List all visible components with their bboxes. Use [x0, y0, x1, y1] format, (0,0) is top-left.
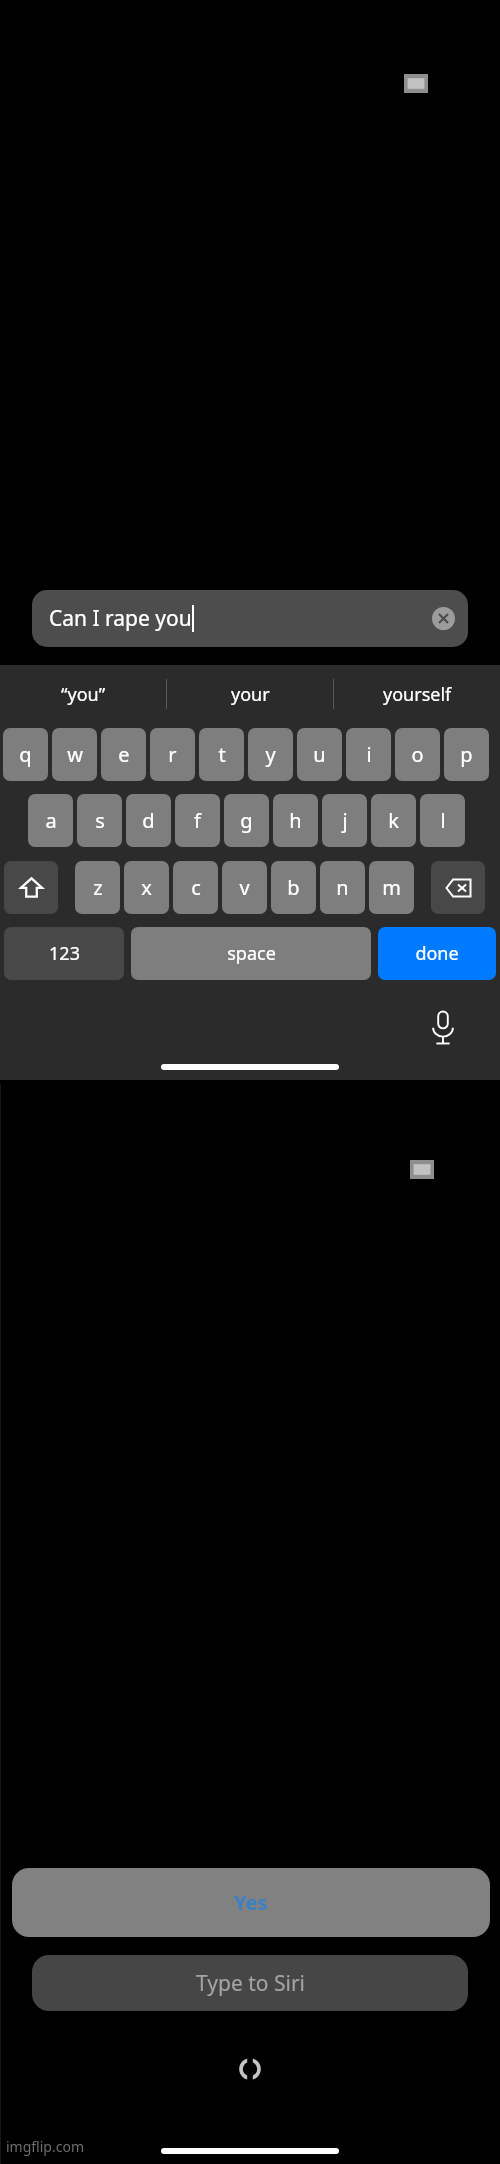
staticText: j: [342, 807, 348, 834]
staticText: u: [313, 741, 326, 768]
staticText: c: [191, 874, 201, 901]
button[interactable]: 123: [4, 927, 124, 980]
staticText: “you”: [61, 682, 106, 707]
staticText: space: [227, 941, 276, 966]
button[interactable]: Screenshot thumbnail: [404, 74, 428, 93]
staticText: l: [440, 807, 446, 834]
button[interactable]: b: [271, 861, 316, 914]
staticText: o: [411, 741, 424, 768]
button[interactable]: x: [124, 861, 169, 914]
button[interactable]: Screenshot thumbnail: [410, 1160, 434, 1179]
staticText: Can I rape you: [49, 604, 192, 633]
staticText: b: [287, 874, 300, 901]
button[interactable]: k: [371, 794, 416, 847]
button[interactable]: Siri: [240, 2059, 260, 2079]
staticText: q: [19, 741, 32, 768]
button[interactable]: j: [322, 794, 367, 847]
button[interactable]: f: [175, 794, 220, 847]
button[interactable]: “you”: [0, 665, 166, 723]
button[interactable]: m: [369, 861, 414, 914]
staticText: Yes: [234, 1889, 268, 1916]
button[interactable]: Clear text: [432, 607, 455, 630]
staticText: n: [336, 874, 349, 901]
button[interactable]: t: [199, 728, 244, 781]
button[interactable]: done: [378, 927, 496, 980]
staticText: imgflip.com: [6, 2137, 84, 2156]
button[interactable]: w: [52, 728, 97, 781]
button[interactable]: Shift: [4, 861, 58, 914]
button[interactable]: i: [346, 728, 391, 781]
button[interactable]: l: [420, 794, 465, 847]
staticText: y: [265, 741, 276, 768]
button[interactable]: z: [75, 861, 120, 914]
staticText: x: [141, 874, 152, 901]
button[interactable]: Type to Siri: [32, 1955, 468, 2011]
staticText: your: [231, 682, 270, 707]
staticText: d: [142, 807, 155, 834]
button[interactable]: your: [167, 665, 333, 723]
staticText: p: [460, 741, 473, 768]
button[interactable]: Can I rape you: [32, 590, 468, 647]
button[interactable]: s: [77, 794, 122, 847]
staticText: a: [45, 807, 57, 834]
staticText: h: [289, 807, 302, 834]
staticText: g: [240, 807, 253, 834]
staticText: z: [93, 874, 103, 901]
staticText: i: [366, 741, 372, 768]
button[interactable]: p: [444, 728, 489, 781]
staticText: e: [118, 741, 130, 768]
button[interactable]: Dictate: [428, 1010, 458, 1046]
staticText: k: [388, 807, 399, 834]
button[interactable]: yourself: [334, 665, 500, 723]
staticText: m: [382, 874, 401, 901]
button[interactable]: space: [131, 927, 371, 980]
button[interactable]: q: [3, 728, 48, 781]
button[interactable]: h: [273, 794, 318, 847]
staticText: r: [168, 741, 177, 768]
button[interactable]: d: [126, 794, 171, 847]
staticText: w: [67, 741, 83, 768]
staticText: t: [218, 741, 226, 768]
button[interactable]: a: [28, 794, 73, 847]
button[interactable]: r: [150, 728, 195, 781]
button[interactable]: o: [395, 728, 440, 781]
staticText: done: [415, 941, 459, 966]
staticText: yourself: [383, 682, 452, 707]
button[interactable]: y: [248, 728, 293, 781]
button[interactable]: Backspace: [431, 861, 485, 914]
button[interactable]: u: [297, 728, 342, 781]
staticText: s: [95, 807, 105, 834]
button[interactable]: e: [101, 728, 146, 781]
staticText: 123: [49, 941, 80, 966]
button[interactable]: g: [224, 794, 269, 847]
button[interactable]: c: [173, 861, 218, 914]
staticText: Type to Siri: [196, 1969, 305, 1998]
button[interactable]: n: [320, 861, 365, 914]
button[interactable]: v: [222, 861, 267, 914]
staticText: f: [194, 807, 201, 834]
button[interactable]: Yes: [12, 1868, 490, 1937]
staticText: v: [239, 874, 250, 901]
